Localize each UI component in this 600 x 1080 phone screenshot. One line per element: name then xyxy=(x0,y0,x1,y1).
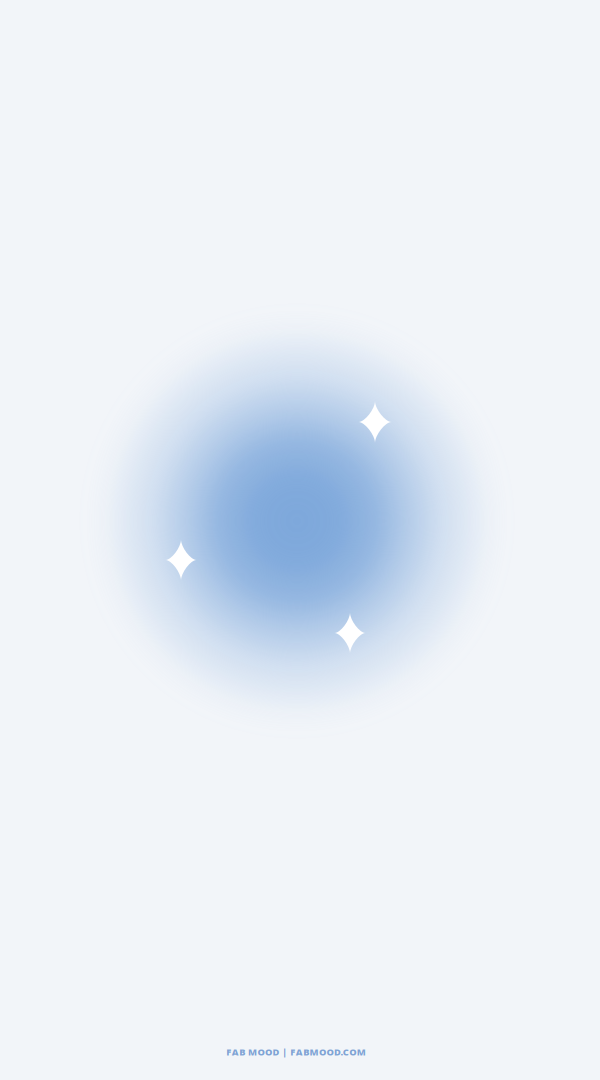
button[interactable]: FAB MOOD | FABMOOD.COM xyxy=(226,1046,366,1058)
staticText: FAB MOOD | FABMOOD.COM xyxy=(226,1046,366,1058)
